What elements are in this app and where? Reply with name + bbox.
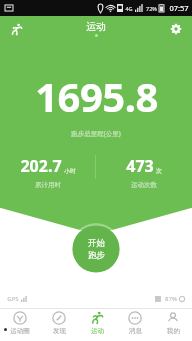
button[interactable]: 消息	[116, 311, 154, 341]
staticText: 开始	[88, 238, 105, 249]
staticText: 72%	[146, 5, 157, 12]
staticText: 消息	[129, 327, 142, 335]
staticText: 发现	[53, 327, 66, 335]
button[interactable]: 202.7	[0, 155, 95, 189]
staticText: 累计用时	[35, 181, 61, 189]
button[interactable]: 运动	[78, 311, 116, 341]
staticText: 跑步总里程(公里)	[71, 129, 121, 138]
staticText: 运动次数	[131, 181, 157, 189]
staticText: 87%	[165, 295, 177, 303]
staticText: 07:57	[169, 3, 189, 13]
staticText: 次	[156, 167, 162, 175]
staticText: 4G	[125, 5, 133, 12]
button[interactable]: Settings	[166, 19, 186, 39]
staticText: 473	[126, 155, 154, 177]
staticText: 我的	[167, 327, 180, 335]
staticText: GPS	[7, 295, 19, 303]
staticText: 小时	[64, 167, 76, 175]
staticText: 跑步	[88, 250, 105, 261]
staticText: 运动	[86, 20, 106, 33]
button[interactable]: 开始	[70, 223, 122, 275]
staticText: 202.7	[20, 155, 62, 177]
button[interactable]: 我的	[154, 311, 192, 341]
button[interactable]: 运动圈	[0, 311, 39, 341]
button[interactable]: 发现	[39, 311, 78, 341]
staticText: 运动	[91, 327, 104, 335]
button[interactable]: 473	[96, 155, 192, 189]
staticText: 1695.8	[35, 69, 158, 123]
staticText: 运动圈	[10, 327, 30, 335]
button[interactable]: Running record	[6, 19, 26, 39]
